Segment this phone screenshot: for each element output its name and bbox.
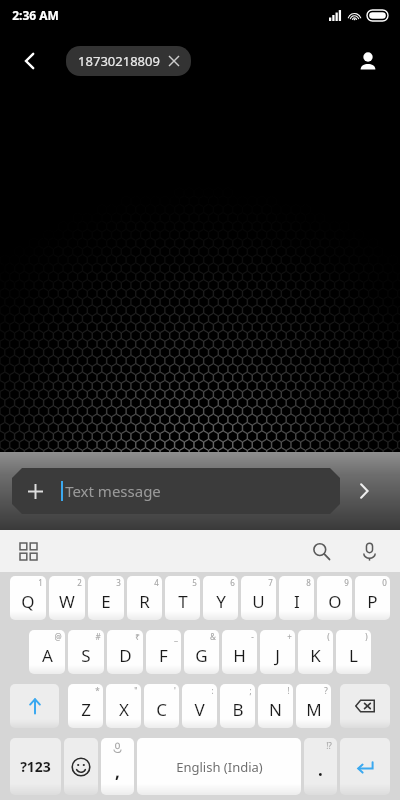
staticText: Y [216, 590, 226, 613]
button[interactable]: 0 [355, 576, 390, 620]
staticText: ( [327, 631, 330, 642]
staticText: P [367, 590, 378, 613]
staticText: * [95, 685, 100, 696]
staticText: Text message [65, 481, 161, 501]
staticText: : [211, 685, 214, 696]
staticText: V [194, 698, 205, 721]
staticText: S [81, 644, 91, 667]
button[interactable]: 4 [127, 576, 162, 620]
staticText: , [115, 760, 120, 783]
button[interactable]: 7 [241, 576, 276, 620]
staticText: G [195, 644, 208, 667]
staticText: 2 [77, 577, 82, 588]
button[interactable]: : [182, 684, 217, 728]
button[interactable]: Back [8, 39, 52, 83]
button[interactable]: Shift [10, 684, 59, 728]
button[interactable]: " [106, 684, 141, 728]
staticText: + [287, 631, 292, 642]
staticText: 3 [116, 577, 121, 588]
button[interactable]: + [260, 630, 295, 674]
staticText: J [275, 644, 280, 667]
staticText: ' [174, 685, 176, 696]
staticText: H [233, 644, 246, 667]
button[interactable]: Symbols [10, 738, 61, 795]
button[interactable]: * [68, 684, 103, 728]
staticText: - [251, 631, 254, 642]
button[interactable]: ; [220, 684, 255, 728]
staticText: A [42, 644, 53, 667]
staticText: _ [174, 631, 178, 642]
button[interactable]: 1 [10, 576, 46, 620]
staticText: L [349, 644, 358, 667]
staticText: ₹ [135, 631, 140, 642]
button[interactable]: ( [298, 630, 333, 674]
button[interactable]: ₹ [107, 630, 143, 674]
staticText: D [119, 644, 132, 667]
staticText: 0 [382, 577, 387, 588]
staticText: E [101, 590, 111, 613]
button[interactable]: 2 [49, 576, 85, 620]
button[interactable]: Send [340, 463, 388, 519]
staticText: @ [54, 631, 62, 642]
button[interactable]: 8 [279, 576, 314, 620]
staticText: O [328, 590, 342, 613]
button[interactable]: English (India) [137, 738, 301, 795]
staticText: 1 [38, 577, 43, 588]
button[interactable]: Keyboard menu [10, 533, 46, 569]
button[interactable]: # [68, 630, 104, 674]
button[interactable]: ? [296, 684, 331, 728]
staticText: Z [81, 698, 91, 721]
button[interactable]: 3 [88, 576, 124, 620]
button[interactable]: Text message [12, 468, 340, 514]
staticText: I [294, 590, 300, 613]
button[interactable]: 9 [317, 576, 352, 620]
button[interactable]: 5 [165, 576, 200, 620]
button[interactable]: Search [304, 534, 338, 568]
staticText: " [134, 685, 138, 696]
button[interactable]: Voice input [352, 534, 386, 568]
staticText: ) [365, 631, 368, 642]
staticText: Q [21, 590, 35, 613]
button[interactable]: Enter [340, 738, 390, 795]
staticText: 18730218809 [78, 52, 160, 70]
staticText: 5 [192, 577, 197, 588]
staticText: C [156, 698, 167, 721]
button[interactable]: Emoji [64, 738, 98, 795]
button[interactable]: @ [29, 630, 65, 674]
staticText: U [252, 590, 265, 613]
button[interactable]: !? [304, 738, 337, 795]
staticText: K [310, 644, 321, 667]
staticText: . [318, 758, 323, 781]
staticText: W [59, 590, 75, 613]
staticText: X [119, 698, 129, 721]
staticText: M [306, 698, 322, 721]
staticText: N [269, 698, 282, 721]
button[interactable]: _ [146, 630, 181, 674]
staticText: F [159, 644, 168, 667]
button[interactable]: ' [144, 684, 179, 728]
button[interactable]: 18730218809 [66, 46, 191, 76]
button[interactable]: Backspace [340, 684, 390, 728]
button[interactable]: Contact [346, 39, 390, 83]
staticText: ?123 [20, 757, 51, 776]
button[interactable]: , [101, 738, 134, 795]
staticText: 4 [154, 577, 159, 588]
staticText: # [95, 631, 101, 642]
staticText: T [178, 590, 188, 613]
button[interactable]: & [184, 630, 219, 674]
staticText: 2:36 AM [12, 7, 59, 23]
staticText: 9 [344, 577, 349, 588]
staticText: 7 [268, 577, 273, 588]
staticText: & [210, 631, 216, 642]
button[interactable]: - [222, 630, 257, 674]
button[interactable]: ! [258, 684, 293, 728]
staticText: R [139, 590, 150, 613]
staticText: !? [326, 740, 332, 751]
button[interactable]: 6 [203, 576, 238, 620]
staticText: English (India) [176, 758, 263, 776]
staticText: 8 [306, 577, 311, 588]
staticText: ? [324, 685, 328, 696]
button[interactable]: ) [336, 630, 371, 674]
staticText: 6 [230, 577, 235, 588]
staticText: ; [249, 685, 252, 696]
